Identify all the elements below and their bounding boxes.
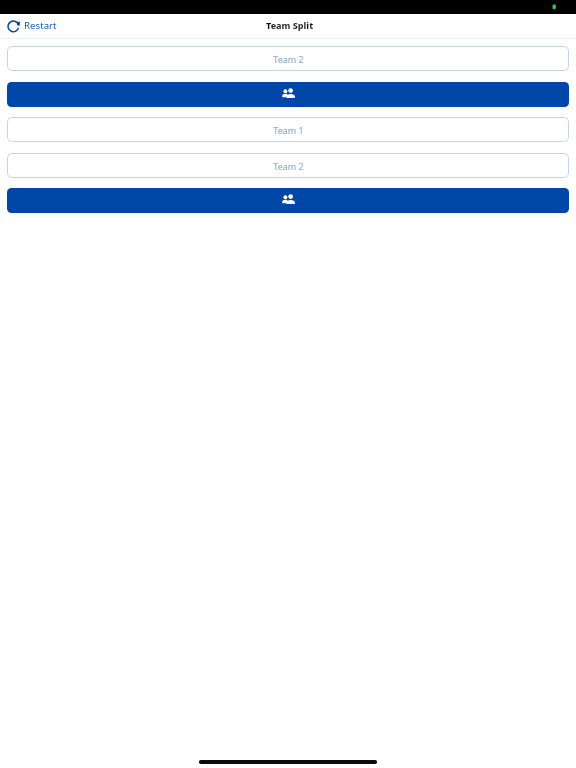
staticText: Team Split bbox=[266, 19, 314, 31]
staticText: Team 1 bbox=[273, 124, 304, 136]
button[interactable]: Assign players to team bbox=[7, 188, 569, 213]
button[interactable]: Restart bbox=[0, 17, 63, 34]
button[interactable]: Team 1 bbox=[7, 117, 569, 142]
button[interactable]: Team 2 bbox=[7, 153, 569, 178]
button[interactable]: Assign players to team bbox=[7, 82, 569, 107]
staticText: Team 2 bbox=[273, 53, 304, 65]
button[interactable]: Team 2 bbox=[7, 46, 569, 71]
staticText: Team 2 bbox=[273, 160, 304, 172]
staticText: Restart bbox=[24, 19, 57, 32]
